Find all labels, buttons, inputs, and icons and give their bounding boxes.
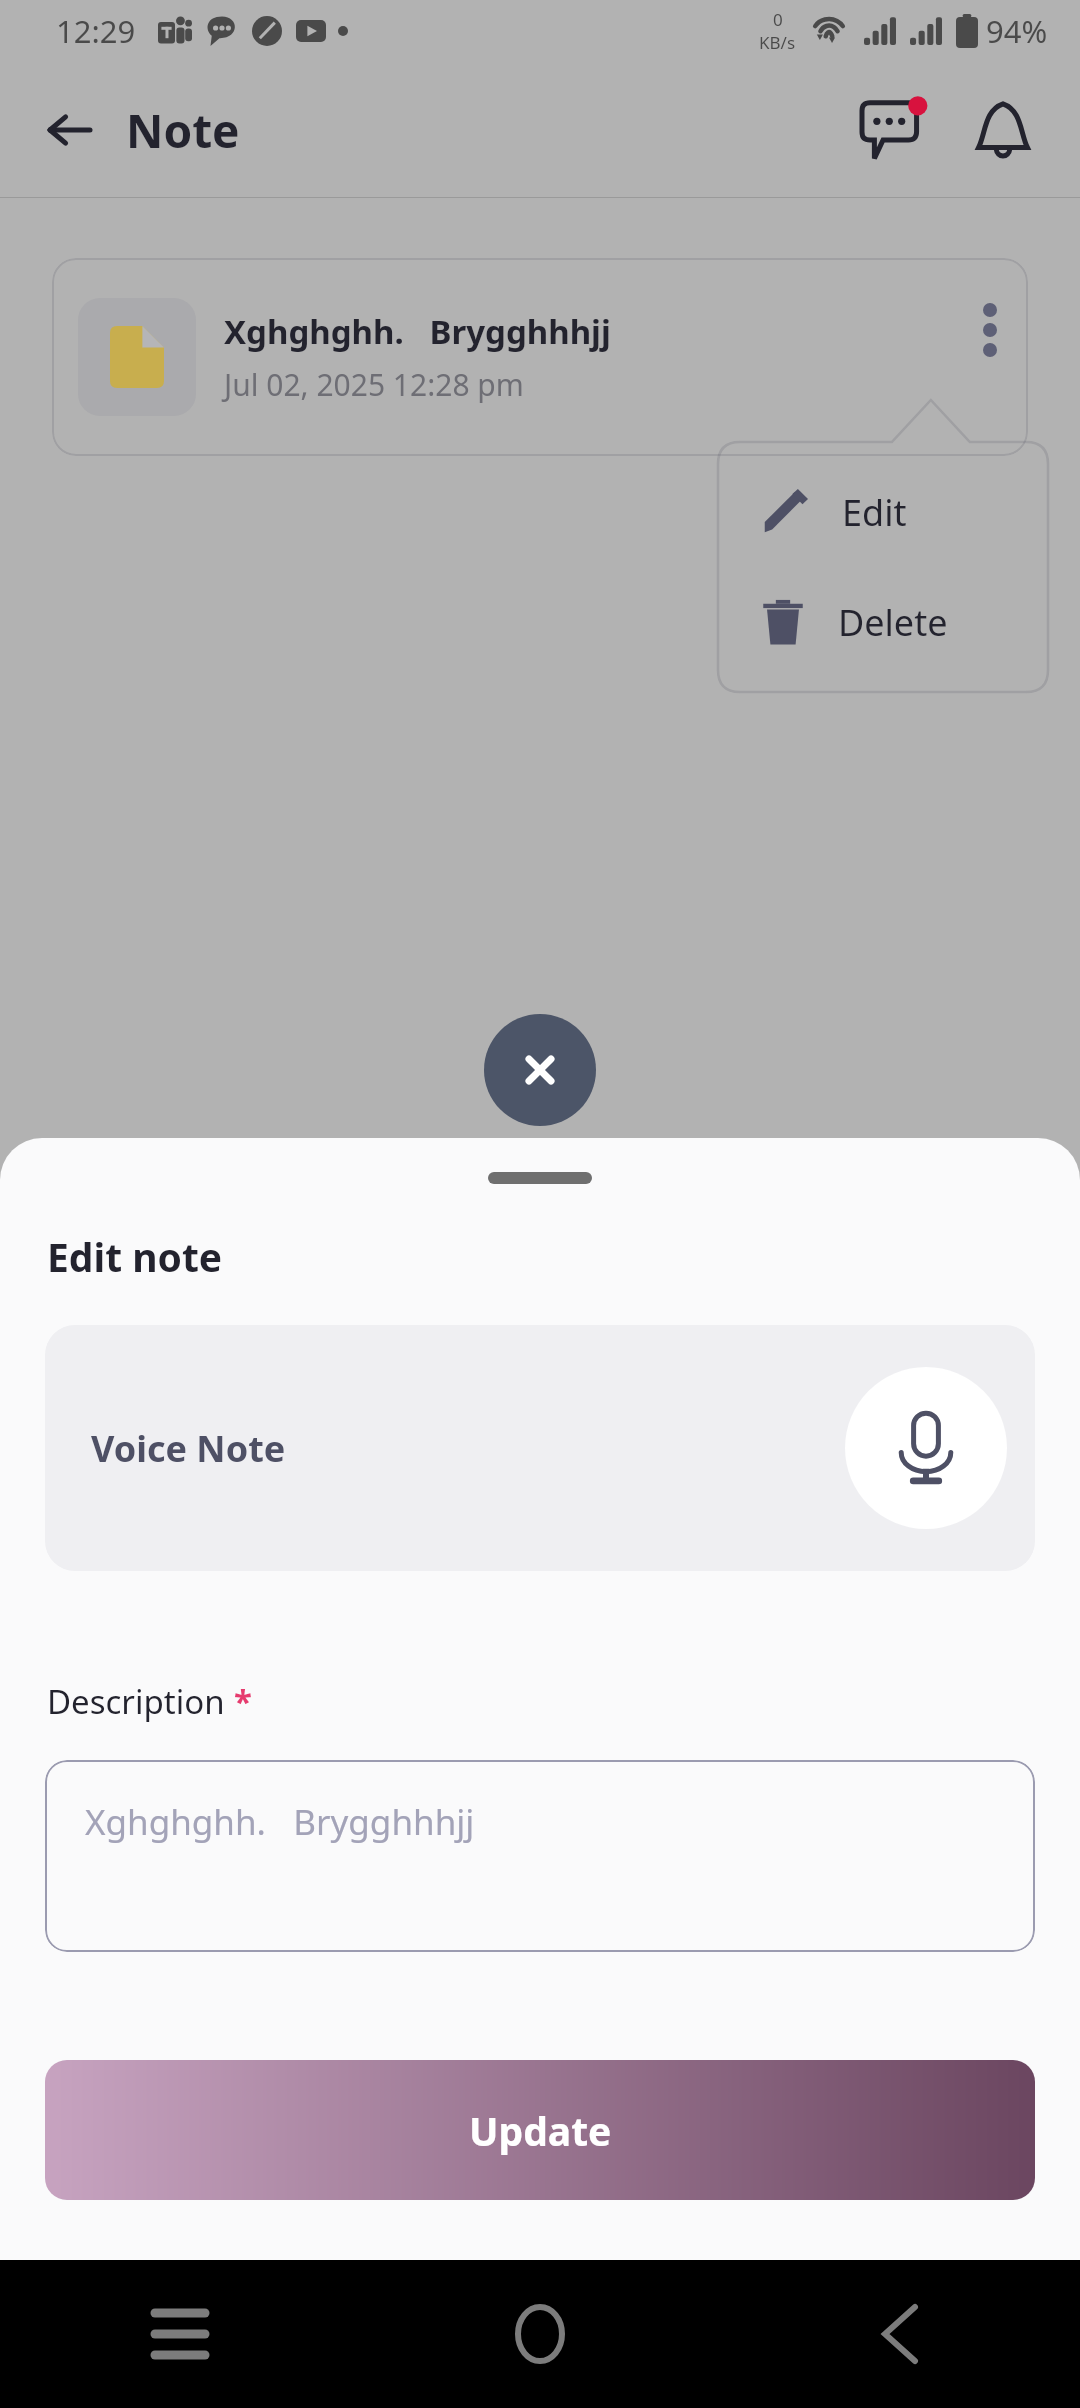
staticText: Edit note — [47, 1230, 223, 1283]
staticText: Xghghghh. Brygghhhjj — [224, 309, 611, 354]
staticText: 0 — [773, 8, 783, 31]
button[interactable]: More options — [952, 292, 1028, 368]
button[interactable]: Back — [720, 2260, 1080, 2408]
button[interactable]: Update — [45, 2060, 1035, 2200]
staticText: KB/s — [759, 31, 796, 54]
button[interactable]: Record voice note — [845, 1367, 1007, 1529]
button[interactable]: Close — [484, 1014, 596, 1126]
button[interactable]: Delete — [718, 567, 1048, 677]
button[interactable]: Xghghghh. Brygghhhjj — [52, 258, 1028, 456]
button[interactable]: Messages — [850, 87, 936, 173]
staticText: Jul 02, 2025 12:28 pm — [224, 364, 524, 405]
button[interactable]: Edit — [718, 457, 1048, 567]
button[interactable]: Xghghghh. Brygghhhjj — [45, 1760, 1035, 1952]
staticText: 94% — [986, 10, 1048, 52]
button[interactable]: Recent apps — [0, 2260, 360, 2408]
staticText: * — [234, 1679, 252, 1724]
staticText: Edit — [842, 488, 907, 537]
button[interactable]: Home — [360, 2260, 720, 2408]
staticText: Update — [469, 2104, 612, 2157]
staticText: 12:29 — [56, 10, 136, 52]
button[interactable]: Notifications — [960, 87, 1046, 173]
staticText: Description — [47, 1679, 234, 1724]
button[interactable]: Back — [34, 94, 106, 166]
staticText: Voice Note — [91, 1424, 286, 1473]
staticText: Xghghghh. Brygghhhjj — [85, 1798, 475, 1846]
staticText: Note — [126, 99, 240, 162]
staticText: Delete — [838, 598, 948, 647]
